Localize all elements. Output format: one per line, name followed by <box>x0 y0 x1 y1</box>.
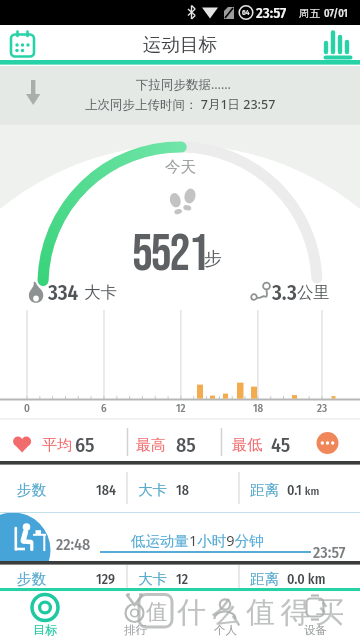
staticText: 距离 <box>250 570 279 588</box>
button[interactable] <box>0 66 360 125</box>
staticText: 平均 <box>42 436 72 455</box>
staticText: 6 <box>101 402 107 415</box>
staticText: 最高 <box>136 436 166 455</box>
staticText: 公里 <box>297 282 330 303</box>
staticText: 大卡 <box>138 570 167 588</box>
staticText: 最低 <box>232 436 262 455</box>
staticText: 18 <box>176 482 189 499</box>
staticText: 45 <box>271 433 291 457</box>
staticText: 12 <box>176 402 186 415</box>
button[interactable] <box>180 589 270 640</box>
staticText: 0.0 km <box>287 571 326 588</box>
staticText: 下拉同步数据…… <box>136 76 231 93</box>
staticText: 334 <box>48 280 79 305</box>
staticText: 步 <box>204 248 222 271</box>
staticText: 什么值得买 <box>177 594 350 631</box>
button[interactable] <box>270 589 360 640</box>
staticText: 设备 <box>304 623 327 637</box>
staticText: 07/01 <box>324 7 348 20</box>
staticText: 今天 <box>165 157 196 177</box>
staticText: 大卡 <box>138 481 167 499</box>
staticText: 23:57 <box>313 543 346 562</box>
staticText: 个人 <box>214 623 237 637</box>
staticText: 排行 <box>124 623 147 637</box>
staticText: 大卡 <box>84 282 117 303</box>
staticText: 23 <box>317 402 328 415</box>
button[interactable] <box>312 428 348 460</box>
staticText: 值 <box>146 599 167 625</box>
staticText: 3.3 <box>272 280 297 305</box>
staticText: 0 <box>24 402 30 415</box>
staticText: 目标 <box>33 622 57 637</box>
staticText: 距离 <box>250 481 279 499</box>
button[interactable] <box>312 27 356 63</box>
staticText: 65 <box>75 433 95 457</box>
staticText: 运动目标 <box>143 33 217 56</box>
button[interactable] <box>4 27 48 63</box>
staticText: 129 <box>96 571 116 588</box>
staticText: 步数 <box>17 481 46 499</box>
staticText: 18 <box>253 402 264 415</box>
staticText: 周五 <box>299 7 320 20</box>
staticText: 184 <box>96 482 116 499</box>
button[interactable] <box>0 506 360 560</box>
staticText: 64 <box>242 8 250 17</box>
staticText: 0.1 km <box>287 482 320 499</box>
button[interactable] <box>90 589 180 640</box>
staticText: 上次同步上传时间： 7月1日 23:57 <box>85 96 276 113</box>
button[interactable] <box>0 589 90 640</box>
staticText: 低运动量1小时9分钟 <box>131 530 264 550</box>
staticText: 5521 <box>132 223 208 285</box>
staticText: 85 <box>176 433 196 457</box>
staticText: 12 <box>176 571 189 588</box>
staticText: 22:48 <box>56 535 91 554</box>
staticText: 23:57 <box>256 4 287 22</box>
staticText: 步数 <box>17 570 46 588</box>
